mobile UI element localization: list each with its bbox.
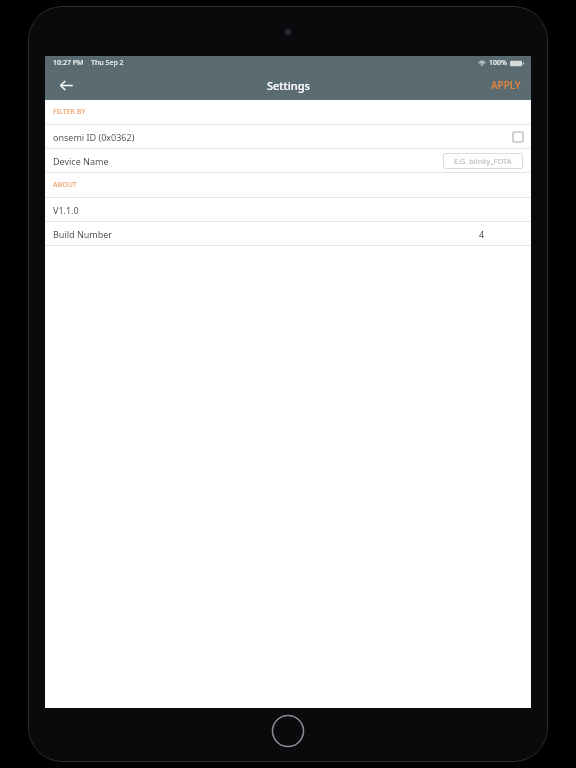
button[interactable]: Home xyxy=(271,714,305,748)
staticText: 100% xyxy=(489,58,507,68)
button[interactable]: onsemi ID (0x0362) xyxy=(45,125,531,148)
staticText: V1.1.0 xyxy=(53,204,79,216)
staticText: APPLY xyxy=(491,78,521,92)
staticText: FILTER BY xyxy=(53,107,86,117)
button[interactable]: APPLY xyxy=(485,74,527,96)
button[interactable]: Build Number xyxy=(45,222,531,245)
button[interactable]: V1.1.0 xyxy=(45,198,531,221)
button[interactable]: Device Name xyxy=(45,149,531,172)
staticText: 10:27 PM xyxy=(53,58,84,68)
staticText: 4 xyxy=(479,228,485,240)
staticText: Thu Sep 2 xyxy=(91,58,124,68)
staticText: Build Number xyxy=(53,228,113,240)
staticText: Device Name xyxy=(53,155,109,167)
button[interactable]: Back xyxy=(53,72,79,98)
staticText: onsemi ID (0x0362) xyxy=(53,131,135,143)
staticText: Settings xyxy=(267,78,310,93)
staticText: E.G. blinky_FOTA xyxy=(454,156,512,166)
staticText: ABOUT xyxy=(53,180,77,190)
